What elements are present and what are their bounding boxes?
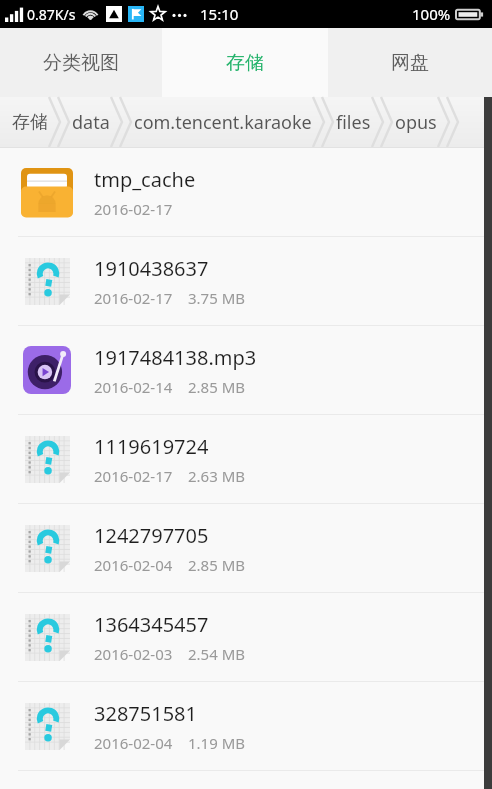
button[interactable]: Unknown file — [0, 415, 492, 503]
staticText: 1917484138.mp3 — [94, 344, 257, 371]
staticText: com.tencent.karaoke — [134, 110, 312, 135]
staticText: 存储 — [12, 111, 48, 134]
staticText: 100% — [412, 4, 451, 24]
button[interactable]: 分类视图 — [0, 28, 162, 97]
button[interactable]: 存储 — [162, 28, 328, 97]
staticText: 2.63 MB — [188, 466, 246, 486]
staticText: 2016-02-03 — [94, 644, 173, 664]
staticText: 2016-02-17 — [94, 288, 173, 308]
button[interactable]: Unknown file — [0, 593, 492, 681]
staticText: 2.54 MB — [188, 644, 246, 664]
button[interactable]: Unknown file — [0, 504, 492, 592]
button[interactable]: com.tencent.karaoke — [134, 97, 312, 147]
staticText: 0.87K/s — [27, 5, 76, 24]
staticText: 网盘 — [391, 51, 429, 75]
staticText: 1.19 MB — [188, 733, 246, 753]
staticText: files — [336, 110, 371, 135]
staticText: 3.75 MB — [188, 288, 246, 308]
staticText: 2016-02-04 — [94, 555, 173, 575]
staticText: 2016-02-17 — [94, 199, 173, 219]
other: Audio file — [21, 344, 73, 396]
staticText: 15:10 — [200, 4, 239, 24]
button[interactable]: opus — [395, 97, 437, 147]
staticText: 1910438637 — [94, 255, 209, 282]
staticText: 1242797705 — [94, 522, 209, 549]
staticText: 1364345457 — [94, 611, 209, 638]
button[interactable]: 存储 — [12, 97, 48, 147]
other: Folder — [20, 165, 74, 219]
staticText: 存储 — [226, 51, 264, 75]
staticText: 2016-02-04 — [94, 733, 173, 753]
staticText: 2016-02-17 — [94, 466, 173, 486]
button[interactable]: Folder — [0, 148, 492, 236]
other: Unknown file — [21, 433, 73, 485]
staticText: 2.85 MB — [188, 377, 246, 397]
button[interactable]: data — [72, 97, 110, 147]
staticText: 2016-02-14 — [94, 377, 173, 397]
staticText: 328751581 — [94, 700, 197, 727]
button[interactable]: Unknown file — [0, 237, 492, 325]
other: Unknown file — [21, 255, 73, 307]
staticText: data — [72, 110, 110, 135]
staticText: tmp_cache — [94, 166, 196, 193]
other: Unknown file — [21, 611, 73, 663]
staticText: 分类视图 — [43, 51, 119, 75]
button[interactable]: Audio file — [0, 326, 492, 414]
staticText: opus — [395, 110, 437, 135]
other: Unknown file — [21, 522, 73, 574]
button[interactable]: files — [336, 97, 371, 147]
staticText: 1119619724 — [94, 433, 209, 460]
button[interactable]: Unknown file — [0, 682, 492, 770]
other: Unknown file — [21, 700, 73, 752]
staticText: 2.85 MB — [188, 555, 246, 575]
button[interactable]: 网盘 — [328, 28, 492, 97]
